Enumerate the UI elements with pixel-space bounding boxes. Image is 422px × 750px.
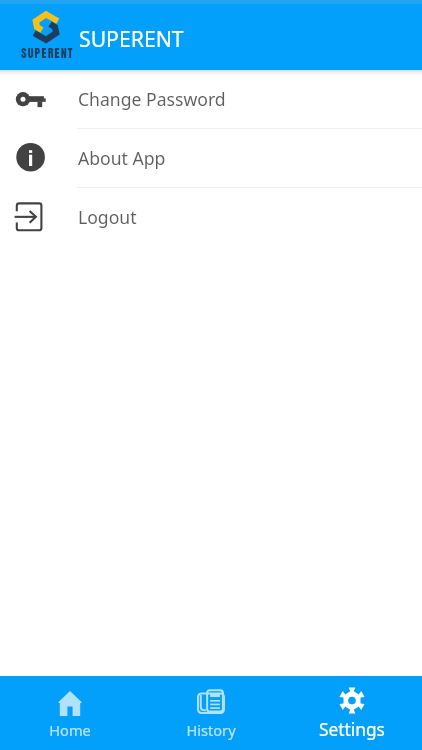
staticText: Home — [49, 720, 91, 740]
staticText: Settings — [319, 718, 385, 742]
staticText: Change Password — [78, 87, 226, 111]
button[interactable]: Change Password — [0, 70, 422, 129]
button[interactable]: Settings — [281, 676, 422, 750]
button[interactable]: Logout — [0, 188, 422, 247]
staticText: About App — [78, 146, 166, 170]
staticText: SUPERENT — [79, 24, 184, 53]
staticText: SUPERENT — [21, 44, 74, 62]
button[interactable]: History — [140, 676, 281, 750]
staticText: Logout — [78, 205, 137, 229]
staticText: History — [186, 720, 236, 740]
button[interactable]: Home — [0, 676, 140, 750]
button[interactable]: About App — [0, 129, 422, 188]
